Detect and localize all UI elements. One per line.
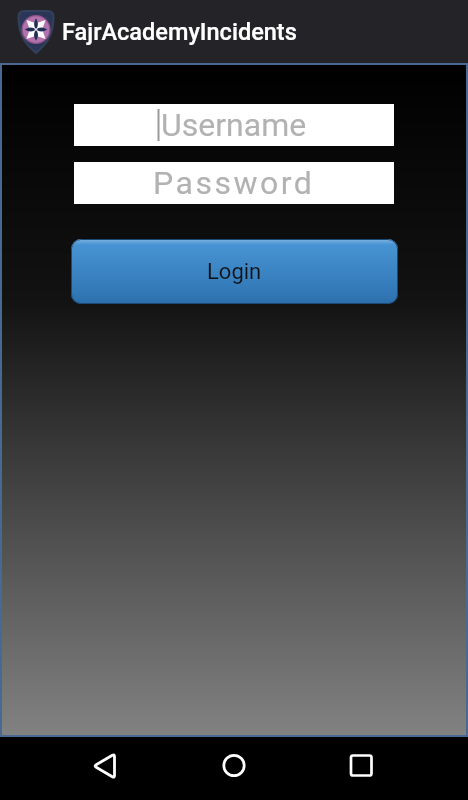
- staticText: Username: [161, 106, 307, 144]
- staticText: Password: [153, 164, 315, 202]
- button[interactable]: Login: [71, 239, 398, 304]
- staticText: FajrAcademyIncidents: [62, 18, 297, 46]
- button[interactable]: [210, 741, 258, 789]
- button[interactable]: Password: [74, 162, 394, 204]
- button[interactable]: Username: [74, 104, 394, 146]
- button[interactable]: [337, 741, 385, 789]
- button[interactable]: [80, 741, 128, 789]
- staticText: Login: [207, 259, 262, 285]
